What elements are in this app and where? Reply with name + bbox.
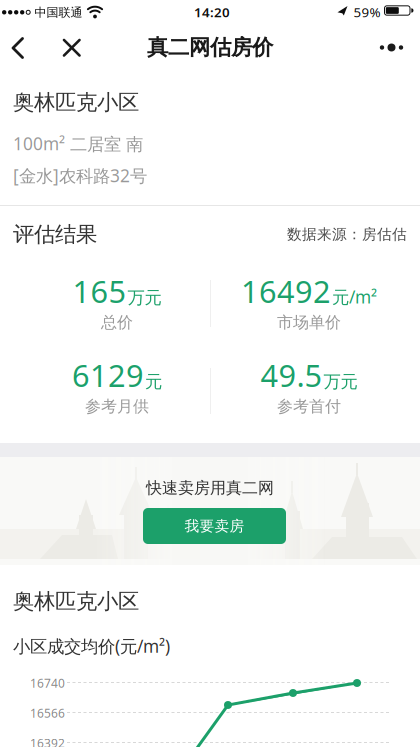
staticText: 真二网估房价 [147,34,273,61]
staticText: 快速卖房用真二网 [146,478,274,498]
staticText: 16492 [241,271,331,311]
staticText: 奥林匹克小区 [13,89,139,116]
staticText: 100m² 二居室 南 [13,132,143,155]
staticText: 参考月供 [85,397,149,416]
staticText: 6129 [72,355,144,395]
button[interactable]: 我要卖房 [143,508,286,544]
staticText: 总价 [101,313,133,332]
staticText: 小区成交均价(元/m²) [13,634,170,657]
staticText: 16392 [30,735,65,747]
button[interactable]: Close [62,38,81,57]
staticText: 数据来源：房估估 [287,225,407,243]
staticText: 16566 [30,705,65,721]
staticText: 59% [353,3,380,21]
staticText: 元 [145,371,162,392]
staticText: 14:20 [194,3,230,21]
staticText: 奥林匹克小区 [13,588,139,615]
staticText: 参考首付 [277,397,341,416]
staticText: 万元 [127,287,161,308]
button[interactable]: More [378,40,405,55]
staticText: 万元 [323,371,357,392]
staticText: 16740 [30,675,65,691]
staticText: 我要卖房 [184,517,244,535]
staticText: 市场单价 [277,313,341,332]
staticText: 49.5 [260,355,322,395]
button[interactable]: Back [10,36,26,59]
staticText: [金水]农科路32号 [13,164,147,187]
staticText: 165 [72,271,126,311]
staticText: 元/m² [332,285,377,308]
staticText: 中国联通 [34,5,82,20]
staticText: 评估结果 [13,221,97,247]
